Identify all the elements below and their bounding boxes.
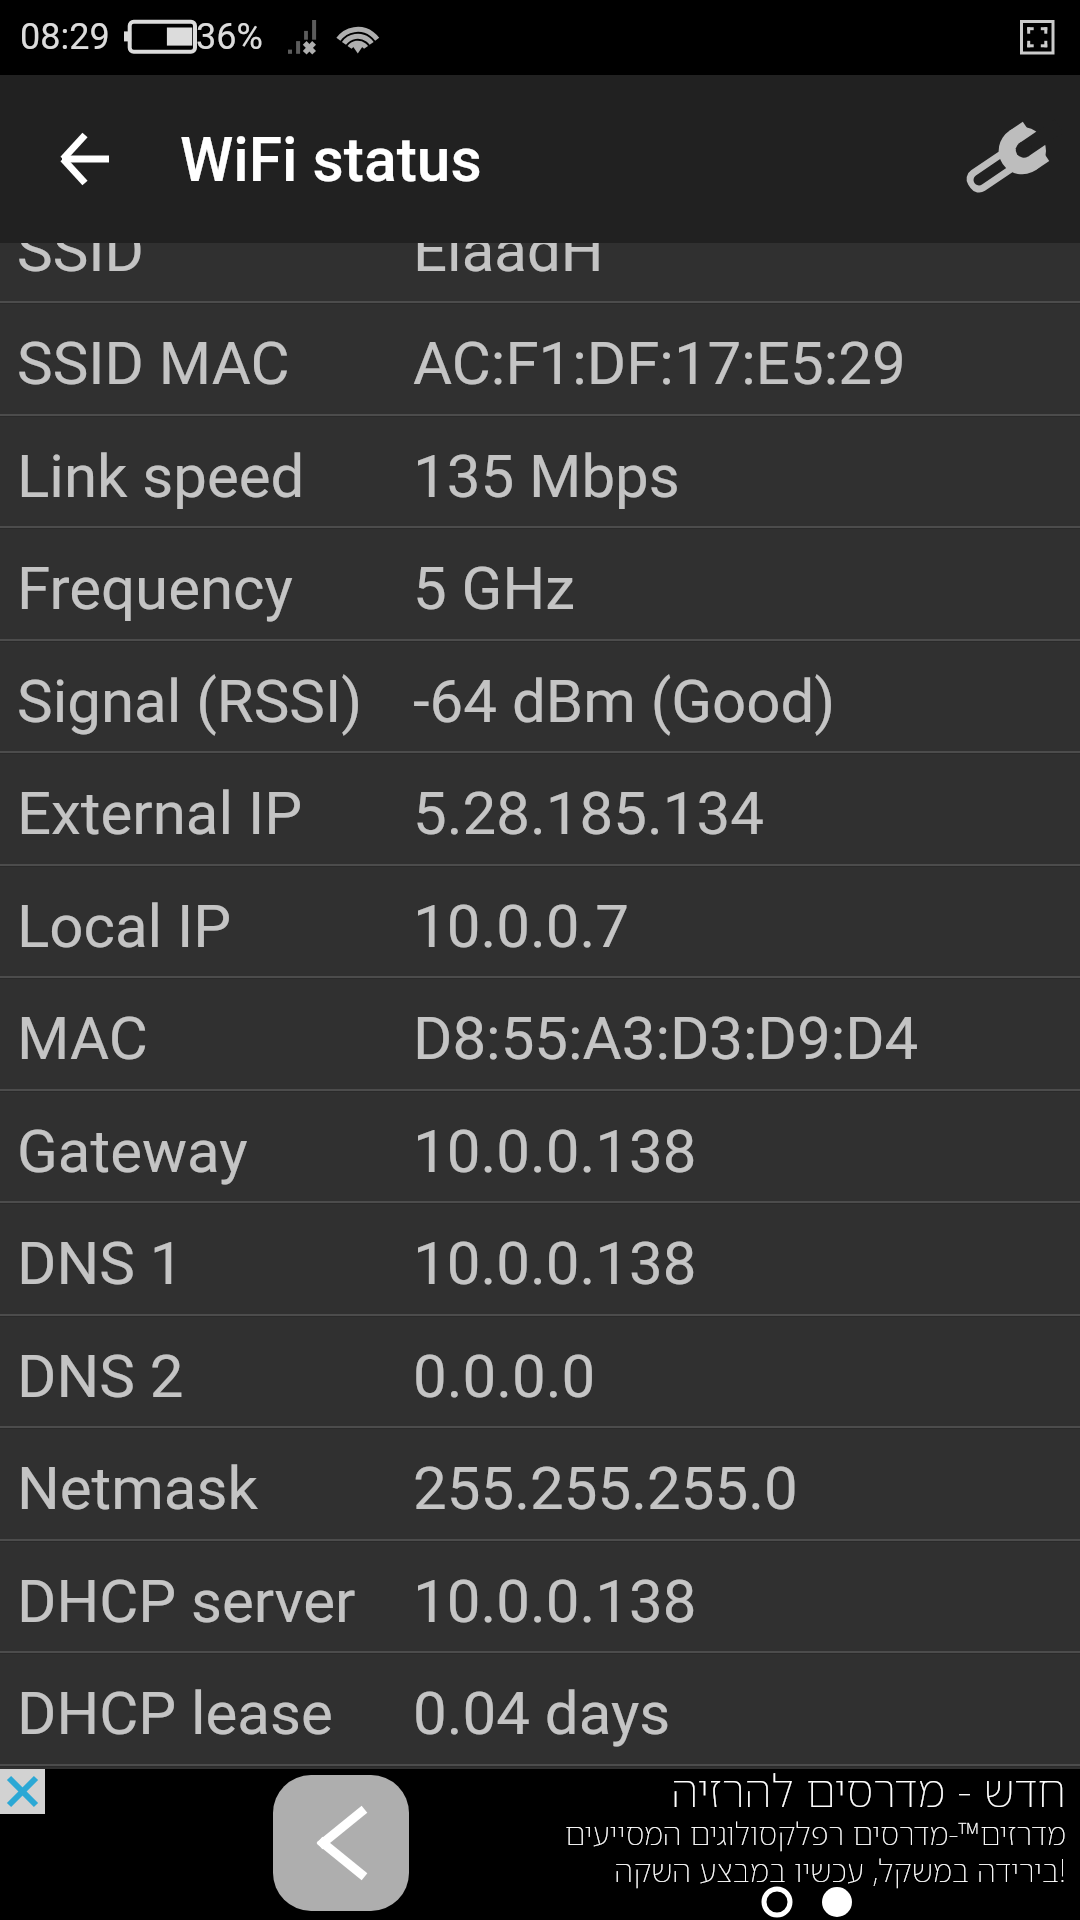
staticText: מדרזים™-מדרסים רפלקסולוגים המסייעים <box>564 1812 1066 1854</box>
staticText: 0.04 days <box>413 1678 671 1748</box>
staticText: 0.0.0.0 <box>413 1341 596 1411</box>
staticText: SSID <box>17 243 144 285</box>
button[interactable]: Signal (RSSI) <box>0 642 1080 753</box>
button[interactable]: SSID <box>0 243 1080 302</box>
button[interactable]: MAC <box>0 979 1080 1090</box>
staticText: DHCP lease <box>17 1678 333 1748</box>
staticText: Signal (RSSI) <box>17 666 363 736</box>
staticText: 08:29 <box>20 16 110 58</box>
staticText: בירידה במשקל, עכשיו במבצע השקה! <box>614 1849 1066 1891</box>
button[interactable]: Netmask <box>0 1429 1080 1540</box>
button[interactable]: Settings <box>955 104 1065 214</box>
staticText: 10.0.0.138 <box>413 1116 697 1186</box>
staticText: External IP <box>17 778 303 848</box>
button[interactable]: DHCP server <box>0 1542 1080 1653</box>
staticText: DNS 2 <box>17 1341 184 1411</box>
staticText: 10.0.0.7 <box>413 891 630 961</box>
staticText: חדש - מדרסים להרזיה <box>671 1759 1066 1820</box>
staticText: DNS 1 <box>17 1228 184 1298</box>
button[interactable]: DNS 1 <box>0 1204 1080 1315</box>
staticText: 5 GHz <box>413 553 576 623</box>
staticText: D8:55:A3:D3:D9:D4 <box>413 1003 919 1073</box>
staticText: AC:F1:DF:17:E5:29 <box>413 328 906 398</box>
staticText: Local IP <box>17 891 232 961</box>
button[interactable]: External IP <box>0 754 1080 865</box>
staticText: SSID MAC <box>17 328 290 398</box>
staticText: 135 Mbps <box>413 441 680 511</box>
button[interactable]: DNS 2 <box>0 1317 1080 1428</box>
staticText: ElaadH <box>413 243 604 285</box>
button[interactable]: SSID MAC <box>0 304 1080 415</box>
staticText: Link speed <box>17 441 305 511</box>
staticText: DHCP server <box>17 1566 356 1636</box>
button[interactable]: Local IP <box>0 867 1080 978</box>
staticText: 10.0.0.138 <box>413 1228 697 1298</box>
staticText: -64 dBm (Good) <box>413 666 836 736</box>
button[interactable]: Back <box>36 111 132 207</box>
button[interactable]: Link speed <box>0 417 1080 528</box>
staticText: 255.255.255.0 <box>413 1453 798 1523</box>
staticText: 5.28.185.134 <box>413 778 764 848</box>
staticText: Gateway <box>17 1116 248 1186</box>
staticText: 10.0.0.138 <box>413 1566 697 1636</box>
staticText: 36% <box>196 16 263 58</box>
button[interactable]: DHCP lease <box>0 1654 1080 1765</box>
staticText: Frequency <box>17 553 293 623</box>
button[interactable]: Frequency <box>0 529 1080 640</box>
staticText: MAC <box>17 1003 148 1073</box>
button[interactable]: Close ad <box>0 1769 45 1814</box>
button[interactable]: Screenshot <box>1013 13 1061 61</box>
staticText: WiFi status <box>180 125 482 196</box>
staticText: Netmask <box>17 1453 258 1523</box>
button[interactable]: Gateway <box>0 1092 1080 1203</box>
